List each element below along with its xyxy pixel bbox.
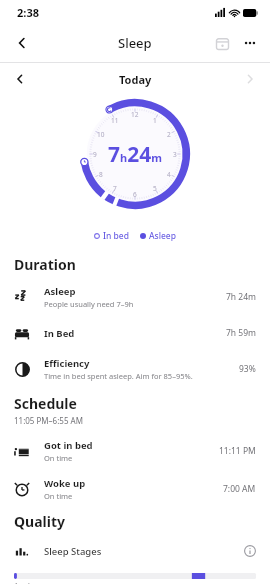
staticText: 11:11 PM: [219, 445, 256, 457]
staticText: 7: [113, 184, 117, 193]
staticText: 3: [173, 150, 177, 159]
button[interactable]: More options: [236, 29, 264, 57]
staticText: Sleep Stages: [44, 545, 244, 558]
staticText: Awake: [14, 581, 36, 584]
staticText: 1: [153, 116, 157, 125]
button[interactable]: In Bed: [0, 316, 270, 350]
staticText: 2:38: [17, 5, 39, 20]
staticText: Got in bed: [44, 439, 93, 452]
staticText: 8: [99, 170, 103, 179]
staticText: 10: [97, 130, 105, 139]
button[interactable]: Woke up: [0, 470, 270, 508]
staticText: Sleep: [118, 34, 152, 52]
staticText: 11:05 PM–6:55 AM: [14, 415, 83, 426]
button[interactable]: Back: [6, 27, 38, 59]
button[interactable]: Got in bed: [0, 432, 270, 470]
staticText: Quality: [14, 512, 65, 531]
staticText: 5: [153, 184, 157, 193]
button[interactable]: Previous day: [6, 65, 34, 93]
staticText: 7h 24m: [226, 291, 256, 303]
staticText: Woke up: [44, 477, 86, 490]
button[interactable]: Calendar: [208, 29, 236, 57]
staticText: In bed: [103, 230, 129, 242]
staticText: 2: [167, 130, 171, 139]
staticText: Time in bed spent asleep. Aim for 85–95%…: [44, 371, 193, 381]
staticText: On time: [44, 453, 73, 463]
button[interactable]: Asleep: [0, 278, 270, 316]
button[interactable]: Efficiency: [0, 350, 270, 388]
staticText: 4: [167, 170, 171, 179]
staticText: 7:00 AM: [223, 483, 256, 495]
staticText: Schedule: [14, 394, 77, 413]
staticText: On time: [44, 491, 73, 501]
staticText: 12: [131, 110, 139, 119]
staticText: Efficiency: [44, 357, 90, 370]
staticText: In Bed: [44, 327, 75, 340]
staticText: 7h24m: [108, 140, 162, 169]
button[interactable]: Sleep Stages: [0, 537, 270, 565]
staticText: Asleep: [44, 285, 76, 298]
staticText: Duration: [14, 255, 76, 274]
staticText: 93%: [239, 363, 256, 375]
button[interactable]: Next day: [236, 65, 264, 93]
staticText: 6: [133, 190, 137, 199]
staticText: 9: [93, 150, 97, 159]
staticText: Asleep: [149, 230, 177, 242]
staticText: Today: [119, 72, 152, 87]
staticText: 11: [111, 116, 119, 125]
staticText: People usually need 7–9h: [44, 299, 134, 309]
staticText: 7h 59m: [226, 327, 256, 339]
